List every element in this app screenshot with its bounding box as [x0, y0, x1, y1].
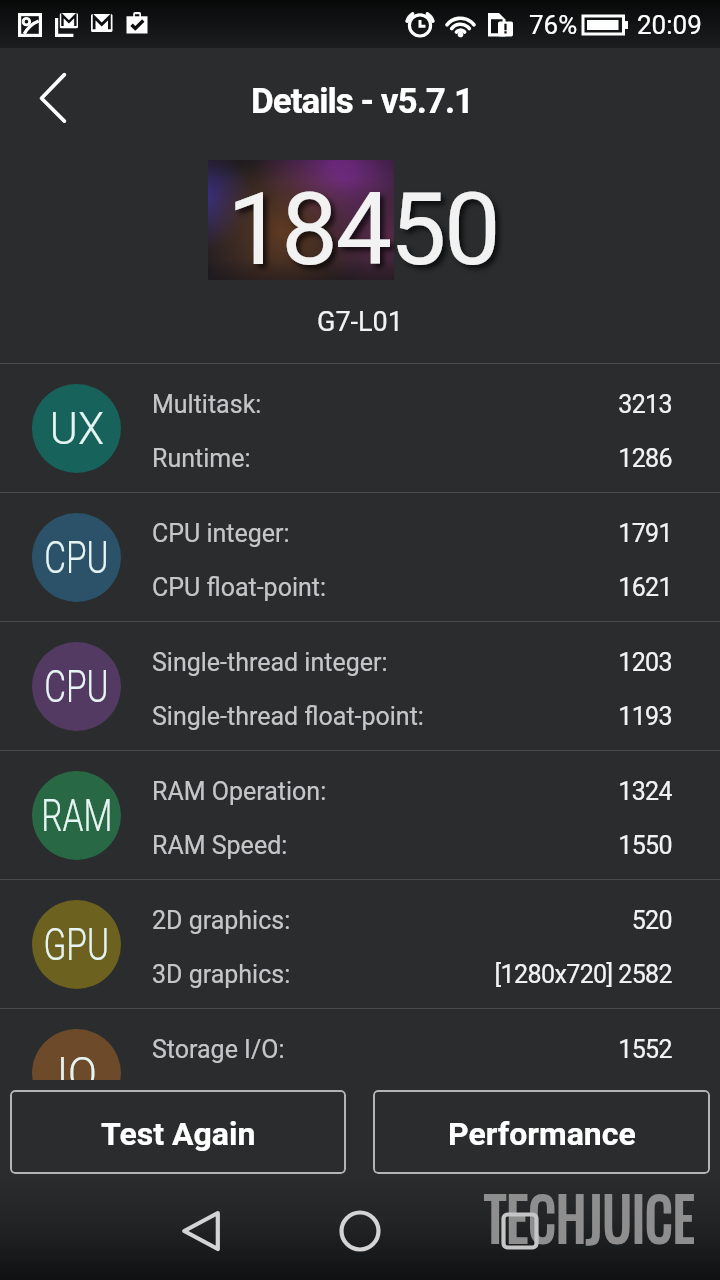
button[interactable]: UX	[0, 364, 720, 492]
staticText: Details - v5.7.1	[251, 81, 474, 122]
staticText: GPU	[43, 919, 109, 971]
staticText: 1550	[0, 831, 672, 860]
button[interactable]: Recents	[490, 1201, 550, 1261]
staticText: 1324	[0, 777, 672, 806]
button[interactable]: RAM	[0, 751, 720, 879]
staticText: CPU integer:	[152, 519, 290, 548]
staticText: 1193	[0, 702, 672, 731]
staticText: 1621	[0, 573, 672, 602]
staticText: 2D graphics:	[152, 906, 291, 935]
button[interactable]: GPU	[0, 880, 720, 1008]
staticText: 520	[0, 906, 672, 935]
staticText: Storage I/O:	[152, 1035, 285, 1064]
staticText: RAM Speed:	[152, 831, 288, 860]
staticText: RAM	[41, 790, 113, 842]
button[interactable]: IO	[0, 1009, 720, 1137]
button[interactable]: Performance	[373, 1090, 710, 1174]
staticText: 3213	[0, 390, 672, 419]
staticText: Performance	[448, 1115, 636, 1153]
button[interactable]: Home	[330, 1201, 390, 1261]
staticText: IO	[57, 1048, 97, 1100]
staticText: 76%	[529, 10, 578, 40]
button[interactable]: Test Again	[10, 1090, 346, 1174]
staticText: 3D graphics:	[152, 960, 291, 989]
staticText: Test Again	[101, 1115, 256, 1153]
staticText: CPU	[44, 661, 109, 713]
button[interactable]: CPU	[0, 622, 720, 750]
staticText: 1552	[0, 1035, 672, 1064]
staticText: TECHJUICE	[484, 1171, 695, 1260]
staticText: CPU	[44, 532, 109, 584]
staticText: Runtime:	[152, 444, 251, 473]
staticText: Single-thread integer:	[152, 648, 388, 677]
staticText: 1791	[0, 519, 672, 548]
button[interactable]: Back	[8, 56, 86, 134]
staticText: 18450	[227, 170, 499, 288]
staticText: UX	[50, 403, 104, 455]
button[interactable]: CPU	[0, 493, 720, 621]
staticText: G7-L01	[317, 306, 403, 338]
staticText: 1203	[0, 648, 672, 677]
button[interactable]: Back	[171, 1201, 231, 1261]
staticText: 1286	[0, 444, 672, 473]
staticText: CPU float-point:	[152, 573, 327, 602]
staticText: RAM Operation:	[152, 777, 327, 806]
staticText: Multitask:	[152, 390, 262, 419]
staticText: Single-thread float-point:	[152, 702, 424, 731]
staticText: [1280x720] 2582	[0, 960, 672, 989]
staticText: 20:09	[637, 10, 702, 40]
